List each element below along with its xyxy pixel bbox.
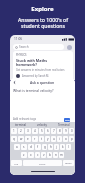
staticText: 2 <box>20 129 22 133</box>
staticText: Explore <box>31 5 54 13</box>
button[interactable]: space <box>23 160 62 166</box>
button[interactable]: Post <box>64 118 70 122</box>
button[interactable]: i <box>57 136 62 142</box>
button[interactable]: k <box>60 144 65 150</box>
button[interactable]: 5 <box>39 128 44 134</box>
staticText: 8 <box>59 129 61 133</box>
staticText: k <box>62 145 64 149</box>
button[interactable]: 7 <box>51 128 56 134</box>
staticText: Post <box>65 119 70 122</box>
staticText: Stuck with Maths homework? <box>16 58 48 67</box>
button[interactable]: Return <box>63 160 74 166</box>
button[interactable]: Numbers <box>11 160 22 166</box>
staticText: Add relevant tags <box>13 117 36 121</box>
staticText: 123 <box>14 162 19 165</box>
staticText: i <box>59 137 60 141</box>
staticText: p <box>71 137 73 141</box>
staticText: Answers to 1000's of student questions <box>18 16 68 30</box>
button[interactable]: r <box>32 136 38 142</box>
staticText: u <box>53 137 55 141</box>
staticText: a <box>16 145 18 149</box>
button[interactable]: h <box>48 144 53 150</box>
button[interactable]: g <box>42 144 47 150</box>
staticText: j <box>56 145 57 149</box>
staticText: q <box>13 137 15 141</box>
button[interactable]: 2 <box>18 128 24 134</box>
staticText: b <box>49 153 51 157</box>
button[interactable]: t <box>39 136 44 142</box>
button[interactable]: c <box>35 152 40 158</box>
staticText: 9 <box>65 129 67 133</box>
staticText: Answered by Sarah M. <box>22 74 49 78</box>
staticText: 6 <box>47 129 49 133</box>
staticText: s <box>23 145 25 149</box>
staticText: 0 <box>71 129 73 133</box>
button[interactable]: s <box>21 144 27 150</box>
button[interactable]: l <box>66 144 71 150</box>
staticText: l <box>68 145 69 149</box>
button[interactable]: 6 <box>45 128 50 134</box>
button[interactable]: 3 <box>25 128 31 134</box>
button[interactable]: Search <box>13 44 64 50</box>
button[interactable]: b <box>47 152 52 158</box>
staticText: 11:06 <box>14 37 23 41</box>
button[interactable]: u <box>51 136 56 142</box>
staticText: terminal <box>15 123 27 127</box>
staticText: y <box>47 137 49 141</box>
staticText: 4 <box>34 129 36 133</box>
staticText: h <box>50 145 52 149</box>
staticText: What is terminal velocity? <box>13 88 54 93</box>
button[interactable]: m <box>59 152 64 158</box>
staticText: w <box>20 137 23 141</box>
staticText: r <box>34 137 36 141</box>
staticText: Ask a question <box>30 80 55 85</box>
button[interactable]: n <box>53 152 58 158</box>
button[interactable]: z <box>21 152 27 158</box>
button[interactable]: 1 <box>11 128 17 134</box>
staticText: t <box>41 137 43 141</box>
button[interactable]: v <box>41 152 46 158</box>
button[interactable]: f <box>35 144 41 150</box>
staticText: o <box>65 137 67 141</box>
staticText: 7 <box>53 129 55 133</box>
button[interactable]: q <box>11 136 17 142</box>
button[interactable]: 4 <box>32 128 38 134</box>
staticText: c <box>37 153 39 157</box>
button[interactable]: x <box>28 152 34 158</box>
staticText: Get answers in minutes from real tutors <box>16 68 65 72</box>
staticText: n <box>55 153 57 157</box>
staticText: 3 <box>27 129 29 133</box>
button[interactable]: 9 <box>63 128 68 134</box>
staticText: d <box>30 145 32 149</box>
button[interactable]: o <box>63 136 68 142</box>
button[interactable]: p <box>69 136 74 142</box>
staticText: return <box>65 162 72 165</box>
staticText: space <box>39 162 46 165</box>
button[interactable]: d <box>28 144 34 150</box>
button[interactable]: e <box>25 136 31 142</box>
staticText: velocity <box>37 123 47 127</box>
staticText: 5 <box>41 129 43 133</box>
button[interactable]: Back <box>12 80 17 85</box>
staticText: f <box>37 145 39 149</box>
staticText: m <box>60 153 63 157</box>
staticText: v <box>43 153 45 157</box>
staticText: Search <box>19 45 29 49</box>
button[interactable]: 8 <box>57 128 62 134</box>
button[interactable]: Profile <box>67 45 72 50</box>
button[interactable]: 0 <box>69 128 74 134</box>
staticText: z <box>23 153 25 157</box>
staticText: Terminal <box>58 123 70 127</box>
button[interactable]: a <box>14 144 20 150</box>
staticText: e <box>27 137 29 141</box>
button[interactable]: j <box>54 144 59 150</box>
staticText: 1 <box>13 129 15 133</box>
staticText: PHYSICS <box>16 53 27 57</box>
button[interactable]: y <box>45 136 50 142</box>
button[interactable]: w <box>18 136 24 142</box>
staticText: x <box>30 153 32 157</box>
staticText: g <box>44 145 46 149</box>
